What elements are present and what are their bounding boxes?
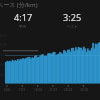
staticText: 0:00 <box>0 88 14 92</box>
staticText: 3:30 <box>0 52 7 57</box>
staticText: 21:03 <box>46 88 60 92</box>
staticText: ベスト <box>67 25 79 30</box>
staticText: 4:30 <box>0 72 7 77</box>
staticText: 14:02 <box>31 88 45 92</box>
staticText: 28:04 <box>61 88 75 92</box>
staticText: 4:00 <box>0 62 7 67</box>
button[interactable]: 3:25 <box>59 11 86 30</box>
staticText: ペース (分/km) <box>0 1 38 9</box>
staticText: 平均 <box>19 25 27 30</box>
staticText: 4:17 <box>14 11 33 24</box>
staticText: 7:01 <box>15 88 29 92</box>
button[interactable]: 4:17 <box>10 11 36 30</box>
staticText: 3:25 <box>63 11 82 24</box>
staticText: 35:05 <box>77 88 91 92</box>
